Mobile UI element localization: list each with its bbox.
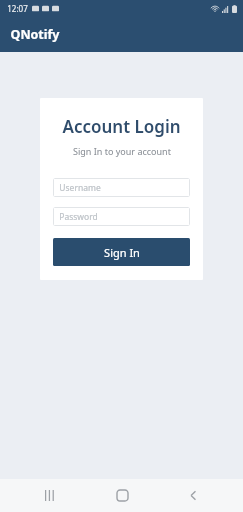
staticText: Username xyxy=(59,182,101,194)
staticText: QNotify xyxy=(10,26,60,43)
button[interactable]: Sign In xyxy=(53,238,190,266)
staticText: Password xyxy=(59,211,98,223)
staticText: Sign In to your account xyxy=(73,145,171,157)
button[interactable]: Password xyxy=(53,207,190,226)
button[interactable]: Username xyxy=(53,178,190,197)
button[interactable]: Recent apps xyxy=(28,479,72,512)
staticText: Account Login xyxy=(62,115,181,138)
staticText: Sign In xyxy=(104,245,140,260)
button[interactable]: Back xyxy=(171,479,215,512)
staticText: 12:07 xyxy=(7,3,28,14)
button[interactable]: Home xyxy=(100,479,144,512)
